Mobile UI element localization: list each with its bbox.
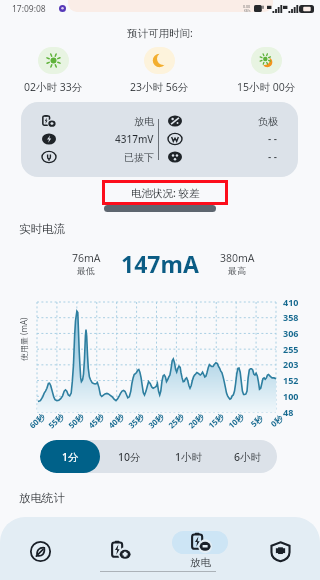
staticText: 负极: [258, 115, 278, 128]
staticText: 25秒: [166, 410, 186, 431]
button[interactable]: Discharge: [172, 531, 228, 569]
staticText: - -: [268, 150, 278, 164]
staticText: 1分: [62, 450, 79, 464]
staticText: 48: [283, 406, 294, 418]
button[interactable]: 电池状况: 较差: [105, 183, 225, 202]
staticText: 15秒: [206, 410, 226, 431]
staticText: 203: [283, 358, 299, 370]
button[interactable]: 6小时: [218, 440, 277, 473]
staticText: 最高: [228, 265, 246, 276]
staticText: 放电: [190, 556, 211, 569]
button[interactable]: Eco: [12, 540, 68, 563]
staticText: 255: [283, 343, 299, 355]
staticText: 使用量 (mA): [18, 317, 29, 361]
staticText: 0秒: [268, 412, 285, 429]
staticText: 306: [283, 327, 299, 339]
staticText: 放电统计: [19, 491, 65, 505]
staticText: 380mA: [220, 251, 255, 265]
staticText: KB/s: [244, 9, 251, 13]
button[interactable]: 1分: [40, 440, 100, 473]
button[interactable]: Health: [252, 540, 308, 563]
staticText: 02小时 33分: [24, 80, 83, 94]
staticText: 1小时: [175, 450, 203, 464]
staticText: 410: [283, 296, 299, 308]
staticText: 0.00: [243, 4, 251, 9]
staticText: 预计可用时间:: [127, 26, 193, 40]
staticText: 4317mV: [115, 132, 154, 146]
staticText: - -: [268, 132, 278, 146]
staticText: 60秒: [27, 410, 47, 431]
staticText: 40秒: [106, 410, 126, 431]
staticText: 45秒: [86, 410, 106, 431]
staticText: 147mA: [121, 248, 199, 279]
staticText: 最低: [77, 265, 95, 276]
staticText: 6小时: [234, 450, 262, 464]
staticText: 15小时 00分: [237, 80, 296, 94]
button[interactable]: Charge: [92, 539, 148, 562]
staticText: 20秒: [186, 410, 206, 431]
staticText: 55秒: [46, 410, 66, 431]
staticText: 已拔下: [124, 151, 154, 164]
button[interactable]: 10分: [100, 440, 159, 473]
staticText: 152: [283, 374, 299, 386]
staticText: 30秒: [146, 410, 166, 431]
staticText: 35秒: [126, 410, 146, 431]
staticText: 实时电流: [19, 222, 65, 236]
staticText: 358: [283, 311, 299, 323]
staticText: 放电: [134, 115, 154, 128]
staticText: 76mA: [72, 251, 101, 265]
staticText: 10秒: [226, 410, 246, 431]
staticText: 100: [283, 390, 299, 402]
staticText: 5秒: [248, 412, 265, 429]
button[interactable]: 1小时: [159, 440, 218, 473]
staticText: 电池状况: 较差: [131, 186, 200, 200]
staticText: 23小时 56分: [130, 80, 189, 94]
staticText: 50秒: [66, 410, 86, 431]
staticText: 17:09:08: [12, 3, 46, 15]
staticText: 10分: [118, 450, 141, 464]
